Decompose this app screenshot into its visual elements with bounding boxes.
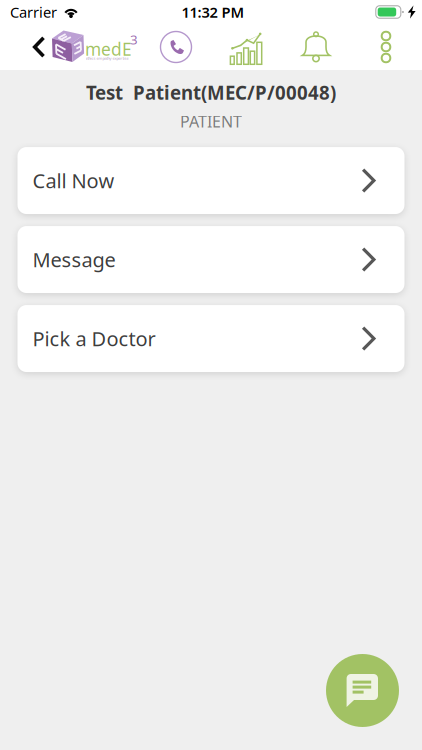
button[interactable]: Message [17, 226, 404, 293]
button[interactable]: Reports [224, 26, 268, 72]
button[interactable]: Call [154, 24, 198, 70]
staticText: PATIENT [180, 111, 242, 132]
staticText: 11:32 PM [181, 2, 244, 22]
staticText: medE [85, 37, 132, 60]
button[interactable]: Chat [326, 654, 399, 727]
staticText: Message [32, 246, 115, 273]
button[interactable]: Call Now [17, 147, 404, 214]
staticText: Test Patient(MEC/P/00048) [86, 80, 336, 105]
button[interactable]: Pick a Doctor [17, 305, 404, 372]
staticText: ethics empathy expertise [85, 55, 128, 61]
button[interactable]: medE3 home [52, 24, 140, 70]
staticText: 3 [130, 30, 138, 48]
staticText: Pick a Doctor [32, 325, 155, 352]
button[interactable]: Notifications [294, 24, 338, 70]
button[interactable]: Back [22, 24, 56, 70]
button[interactable]: More options [364, 24, 408, 70]
staticText: Carrier [10, 2, 57, 22]
staticText: Call Now [32, 167, 114, 194]
